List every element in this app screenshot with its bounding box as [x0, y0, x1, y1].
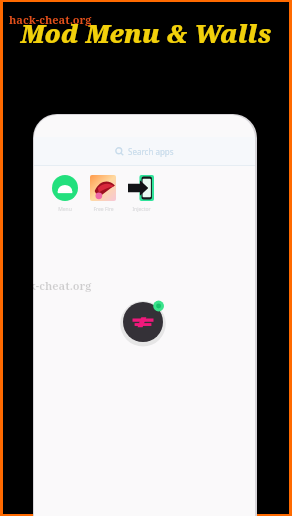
staticText: Search apps — [128, 146, 174, 157]
button[interactable]: Menu — [48, 175, 82, 213]
staticText: Menu — [58, 206, 72, 213]
button[interactable]: Free Fire — [86, 175, 120, 213]
staticText: hack-cheat.org — [9, 12, 92, 27]
button[interactable]: Search apps — [34, 137, 255, 165]
staticText: Injector — [132, 206, 151, 213]
button[interactable]: Open mod menu — [120, 295, 170, 345]
staticText: Mod Menu & Walls — [20, 16, 272, 50]
button[interactable]: Injector — [124, 175, 158, 213]
staticText: hack-cheat.org — [9, 278, 92, 293]
staticText: Free Fire — [93, 206, 114, 213]
